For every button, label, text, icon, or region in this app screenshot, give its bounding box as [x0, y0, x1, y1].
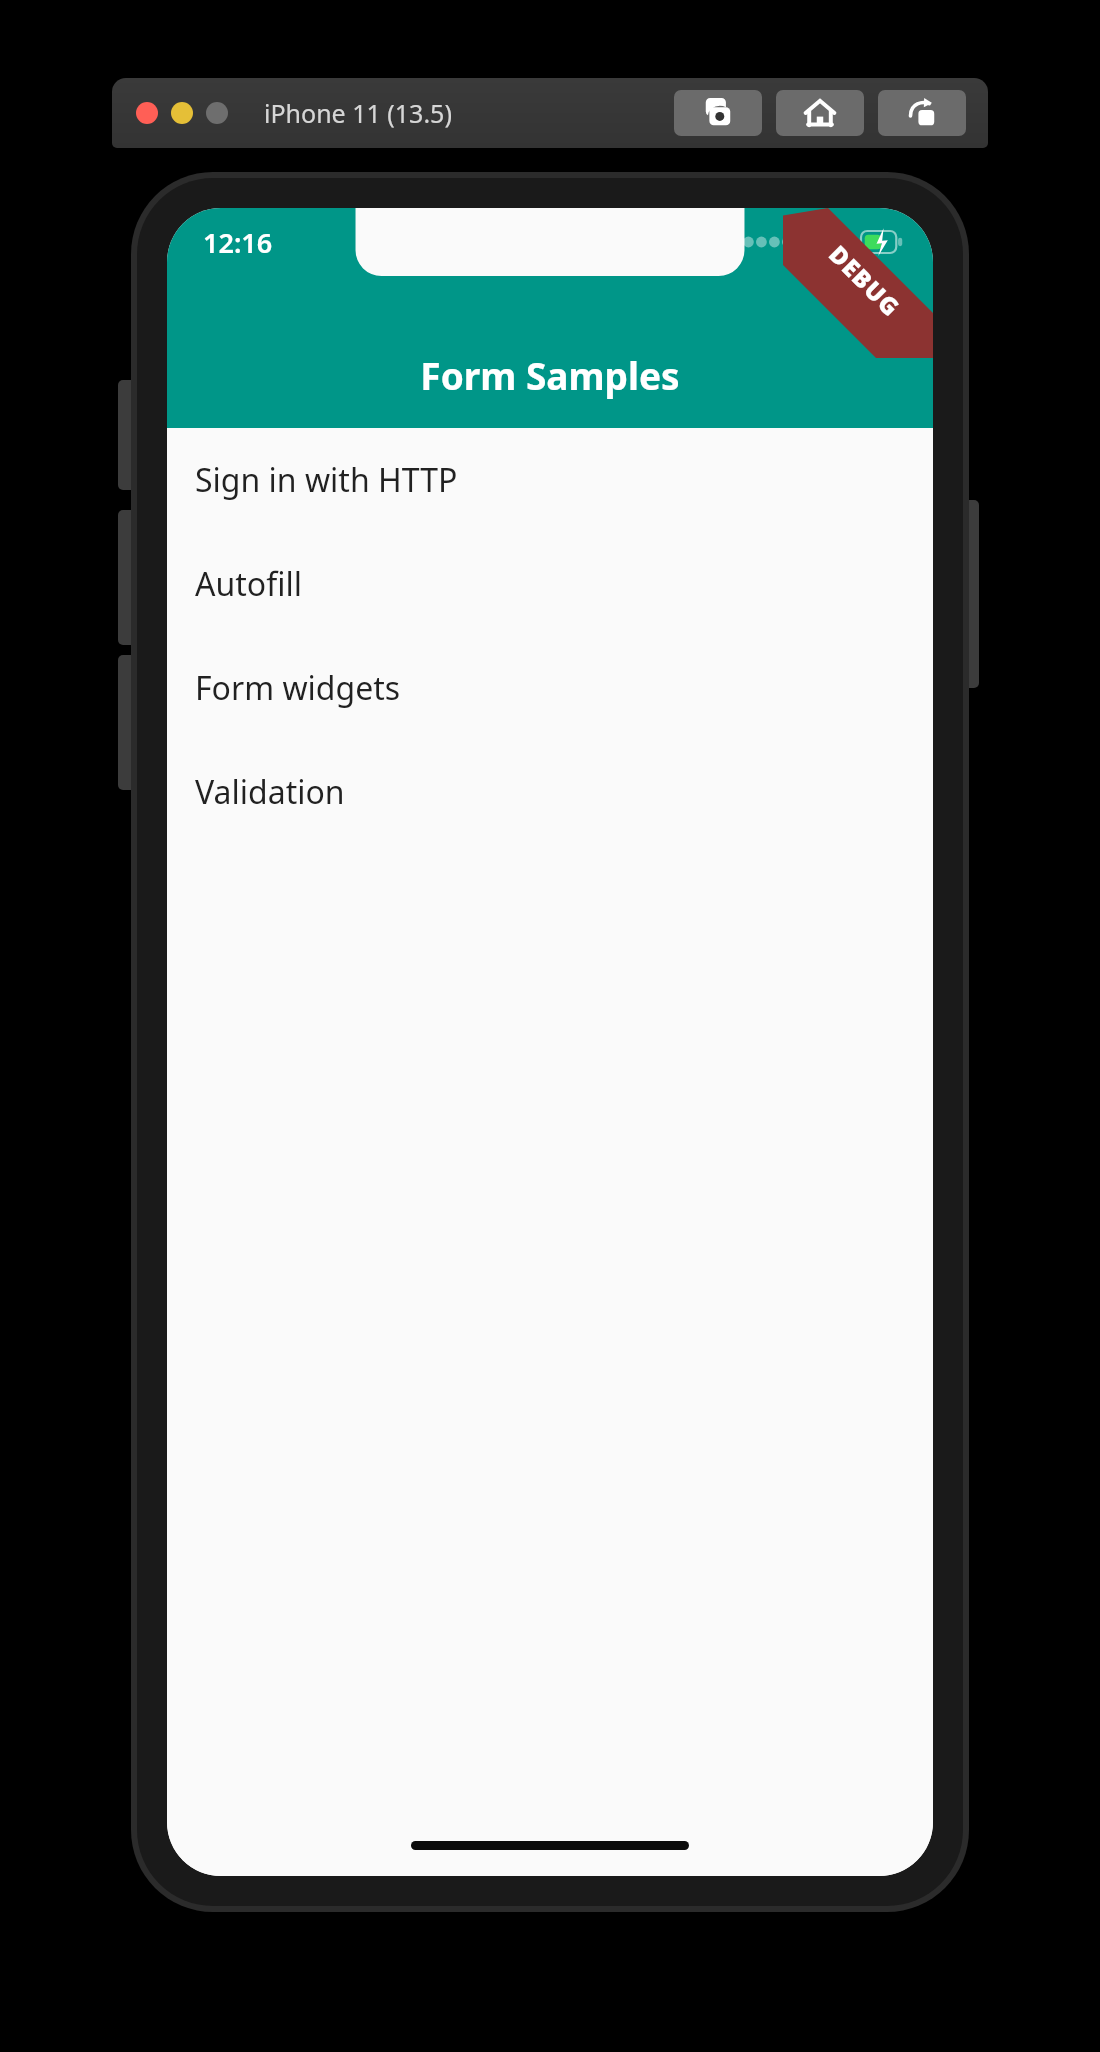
button[interactable]: Minimise: [171, 102, 193, 124]
button[interactable]: Validation: [167, 740, 933, 844]
staticText: Form widgets: [195, 666, 401, 710]
staticText: DEBUG: [822, 238, 908, 323]
button[interactable]: Share: [878, 90, 966, 136]
button[interactable]: Sign in with HTTP: [167, 428, 933, 532]
button[interactable]: Form widgets: [167, 636, 933, 740]
staticText: 12:16: [203, 224, 273, 261]
button[interactable]: Zoom: [206, 102, 228, 124]
staticText: Validation: [195, 770, 345, 814]
staticText: Form Samples: [420, 350, 680, 400]
staticText: Autofill: [195, 562, 302, 606]
button[interactable]: Autofill: [167, 532, 933, 636]
button[interactable]: Close: [136, 102, 158, 124]
button[interactable]: Screenshot: [674, 90, 762, 136]
button[interactable]: Home: [776, 90, 864, 136]
staticText: iPhone 11 (13.5): [264, 96, 452, 130]
staticText: Sign in with HTTP: [195, 458, 458, 502]
